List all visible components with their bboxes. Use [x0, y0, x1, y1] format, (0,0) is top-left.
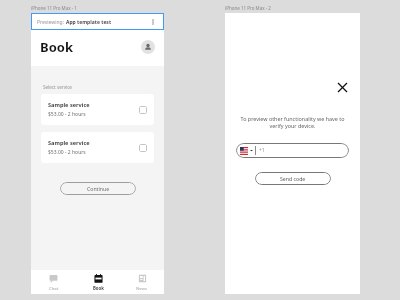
staticText: Sample service — [48, 139, 90, 147]
staticText: App template test — [66, 19, 112, 26]
button[interactable]: Sample service — [41, 132, 154, 163]
staticText: To preview other functionality we have t… — [236, 115, 349, 129]
button[interactable]: Send code — [255, 172, 331, 185]
staticText: Book — [93, 285, 104, 291]
staticText: iPhone 11 Pro Max - 1 — [31, 5, 77, 11]
staticText: iPhone 11 Pro Max - 2 — [225, 5, 271, 11]
staticText: Select service — [43, 84, 72, 90]
staticText: Sample service — [48, 101, 90, 109]
button[interactable]: Previewing: — [31, 13, 164, 30]
staticText: Continue — [87, 185, 110, 192]
button[interactable]: Book — [76, 270, 120, 294]
button[interactable]: Continue — [60, 182, 136, 195]
button[interactable]: +1 — [236, 143, 349, 158]
staticText: Book — [40, 38, 73, 56]
staticText: News — [136, 285, 148, 291]
staticText: Previewing: — [37, 19, 64, 26]
button[interactable]: Select service — [139, 144, 147, 152]
staticText: $53.00 - 2 hours — [48, 111, 86, 118]
staticText: Chat — [49, 285, 59, 291]
staticText: Send code — [280, 175, 306, 182]
staticText: +1 — [259, 147, 265, 154]
button[interactable]: Select service — [139, 106, 147, 114]
button[interactable]: Sample service — [41, 94, 154, 125]
staticText: $53.00 - 2 hours — [48, 149, 86, 156]
button[interactable]: Profile — [141, 40, 155, 54]
button[interactable]: Close — [336, 81, 348, 93]
button[interactable]: News — [120, 270, 164, 294]
button[interactable]: More options — [148, 17, 158, 27]
button[interactable]: Chat — [31, 270, 76, 294]
